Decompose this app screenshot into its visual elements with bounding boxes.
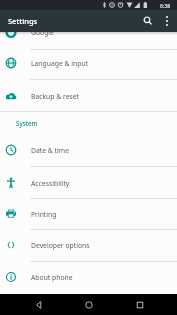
- button[interactable]: Developer options: [0, 229, 177, 261]
- button[interactable]: Language & input: [0, 47, 177, 79]
- staticText: Settings: [8, 16, 38, 26]
- staticText: Google: [31, 32, 54, 37]
- button[interactable]: [161, 13, 173, 29]
- staticText: Accessibility: [31, 179, 70, 188]
- staticText: System: [16, 119, 38, 127]
- staticText: Developer options: [31, 241, 90, 250]
- button[interactable]: [140, 13, 156, 29]
- staticText: About phone: [31, 273, 73, 282]
- staticText: 6:38: [160, 2, 171, 9]
- button[interactable]: Accessibility: [0, 167, 177, 199]
- staticText: Date & time: [31, 146, 69, 155]
- button[interactable]: Printing: [0, 198, 177, 230]
- staticText: Language & input: [31, 59, 89, 68]
- button[interactable]: About phone: [0, 261, 177, 293]
- button[interactable]: [30, 296, 47, 313]
- button[interactable]: [131, 296, 148, 313]
- button[interactable]: Google: [0, 32, 177, 48]
- button[interactable]: [80, 296, 97, 313]
- staticText: Backup & reset: [31, 92, 80, 101]
- button[interactable]: Backup & reset: [0, 80, 177, 112]
- staticText: Printing: [31, 210, 57, 219]
- button[interactable]: Date & time: [0, 134, 177, 166]
